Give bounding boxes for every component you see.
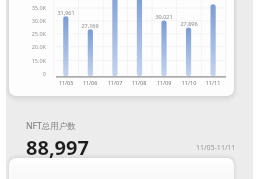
staticText: 88,997 [26,134,89,161]
staticText: 35.0K [14,4,46,11]
staticText: 11/07 [102,79,128,86]
staticText: 11/05 [53,79,79,86]
staticText: 11/08 [126,79,152,86]
staticText: NFT总用户数 [26,120,76,132]
staticText: 20.0K [14,43,46,50]
staticText: 11/05-11/11 [196,143,236,153]
staticText: 30.0K [14,17,46,24]
staticText: 11/09 [151,79,177,86]
staticText: 11/11 [200,79,226,86]
staticText: 0 [14,70,46,77]
staticText: 15.0K [14,57,46,64]
staticText: 31,961 [51,9,81,16]
staticText: 11/10 [176,79,202,86]
staticText: 30,021 [149,13,179,20]
staticText: 11/06 [77,79,103,86]
staticText: 25.0K [14,30,46,37]
staticText: 27,169 [75,22,105,29]
staticText: 27,896 [174,20,204,27]
